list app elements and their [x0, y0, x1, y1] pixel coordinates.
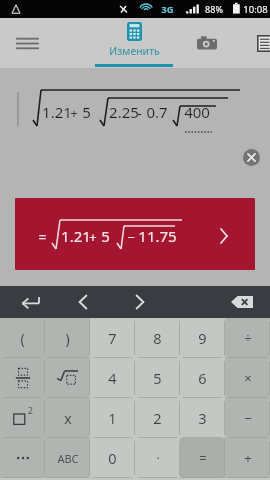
staticText: ÷ — [244, 329, 252, 347]
staticText: 4 — [108, 368, 117, 388]
staticText: = — [38, 227, 47, 246]
button[interactable]: Camera — [187, 20, 227, 66]
button[interactable]: 2 — [135, 398, 180, 438]
staticText: 1.21 — [61, 226, 91, 246]
staticText: 1.21 — [42, 102, 72, 122]
staticText: ( — [20, 329, 25, 348]
button[interactable]: Square — [0, 398, 45, 438]
staticText: 5 — [101, 226, 110, 246]
staticText: × — [244, 369, 252, 387]
button[interactable]: Move left — [65, 287, 101, 317]
staticText: Изменить — [109, 44, 160, 58]
button[interactable]: + — [225, 438, 270, 478]
button[interactable]: Move right — [122, 287, 158, 317]
button[interactable]: 6 — [180, 358, 225, 398]
button[interactable]: − — [225, 398, 270, 438]
button[interactable]: Square root — [45, 358, 90, 398]
button[interactable]: ABC — [45, 438, 90, 478]
button[interactable]: x — [45, 398, 90, 438]
button[interactable]: 3 — [180, 398, 225, 438]
button[interactable]: Menu — [6, 20, 48, 66]
staticText: 0 — [108, 448, 117, 468]
staticText: − — [244, 409, 252, 427]
button[interactable]: · — [135, 438, 180, 478]
button[interactable]: Изменить — [93, 18, 175, 68]
button[interactable]: 0 — [90, 438, 135, 478]
button[interactable]: = — [15, 198, 255, 270]
button[interactable]: 1 — [90, 398, 135, 438]
staticText: 10:08 — [243, 3, 268, 16]
button[interactable]: 9 — [180, 318, 225, 358]
staticText: 0.7 — [146, 102, 168, 122]
staticText: + — [70, 104, 78, 122]
staticText: 5 — [153, 368, 162, 388]
staticText: + — [244, 449, 252, 467]
button[interactable]: = — [180, 438, 225, 478]
staticText: 1 — [108, 408, 117, 428]
staticText: ABC — [57, 451, 79, 466]
staticText: 2 — [153, 408, 162, 428]
button[interactable]: Backspace — [224, 287, 260, 317]
staticText: 5 — [82, 102, 91, 122]
staticText: 3G — [161, 3, 174, 16]
staticText: ) — [65, 329, 70, 348]
button[interactable]: ( — [0, 318, 45, 358]
button[interactable]: × — [225, 358, 270, 398]
button[interactable]: ÷ — [225, 318, 270, 358]
staticText: − — [127, 228, 135, 246]
button[interactable]: More — [0, 438, 45, 478]
button[interactable]: 8 — [135, 318, 180, 358]
button[interactable]: Fraction — [0, 358, 45, 398]
staticText: x — [64, 409, 72, 428]
button[interactable]: Clear — [241, 147, 261, 167]
button[interactable]: List — [242, 20, 270, 66]
staticText: 2.25 — [109, 102, 139, 122]
staticText: + — [89, 228, 97, 246]
staticText: 8 — [153, 328, 162, 348]
staticText: 88% — [205, 3, 223, 15]
staticText: - — [137, 104, 142, 122]
staticText: 2 — [28, 405, 33, 417]
button[interactable]: 7 — [90, 318, 135, 358]
button[interactable]: 4 — [90, 358, 135, 398]
button[interactable]: ) — [45, 318, 90, 358]
staticText: 3 — [198, 408, 207, 428]
button[interactable]: 5 — [135, 358, 180, 398]
staticText: · — [156, 450, 160, 466]
staticText: 6 — [198, 368, 207, 388]
staticText: 400 — [184, 102, 210, 122]
staticText: 9 — [198, 328, 207, 348]
staticText: 11.75 — [138, 226, 177, 246]
staticText: = — [199, 449, 207, 467]
staticText: 7 — [108, 328, 117, 348]
button[interactable]: Enter — [10, 287, 50, 317]
